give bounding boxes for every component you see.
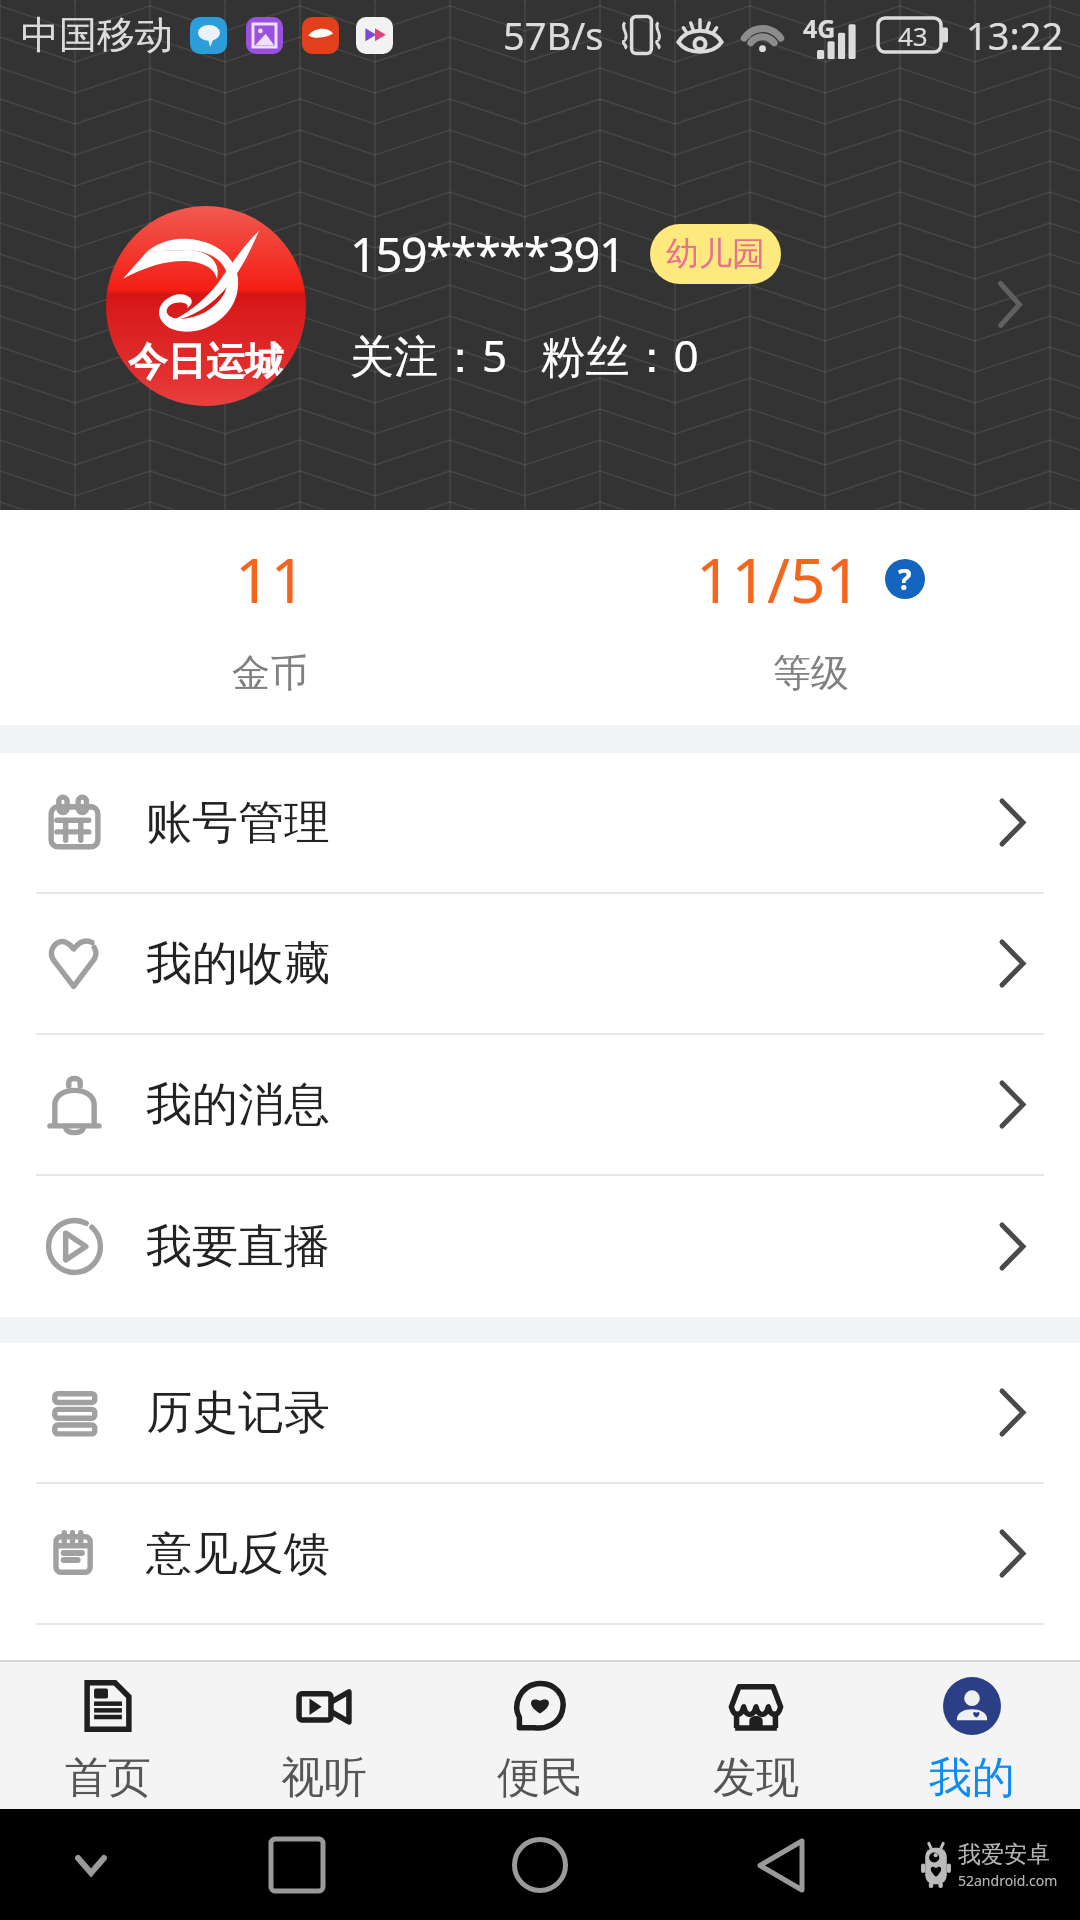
staticText: 发现 <box>713 1751 799 1805</box>
staticText: 账号管理 <box>146 794 330 852</box>
staticText: 11/51 <box>696 537 861 621</box>
button[interactable]: 我的 <box>864 1662 1080 1809</box>
staticText: 中国移动 <box>21 11 173 59</box>
button[interactable]: 幼儿园 <box>650 224 781 284</box>
staticText: 我要直播 <box>146 1218 330 1276</box>
button[interactable]: 意见反馈 <box>0 1484 1080 1625</box>
button[interactable]: Home <box>500 1825 580 1905</box>
button[interactable]: 首页 <box>0 1662 216 1809</box>
staticText: 57B/s <box>503 9 604 61</box>
button[interactable]: 我的收藏 <box>0 894 1080 1035</box>
staticText: 我的消息 <box>146 1076 330 1134</box>
button[interactable]: Avatar <box>106 206 306 406</box>
button[interactable]: Back <box>743 1827 819 1903</box>
staticText: 43 <box>898 18 928 52</box>
staticText: 首页 <box>65 1751 151 1805</box>
staticText: 我的收藏 <box>146 935 330 993</box>
staticText: 便民 <box>497 1751 583 1805</box>
staticText: 52android.com <box>958 1871 1058 1890</box>
staticText: 金币 <box>232 649 308 697</box>
other: Level help <box>885 559 925 599</box>
staticText: 我爱安卓 <box>958 1840 1050 1869</box>
button[interactable]: 11 <box>0 510 540 725</box>
staticText: 意见反馈 <box>146 1525 330 1583</box>
button[interactable]: Profile detail <box>980 262 1040 347</box>
staticText: 等级 <box>773 649 849 697</box>
button[interactable]: 账号管理 <box>0 753 1080 894</box>
button[interactable]: Hide keyboard <box>60 1834 122 1896</box>
staticText: 我的 <box>929 1751 1015 1805</box>
staticText: 关注：5 粉丝：0 <box>350 325 699 385</box>
staticText: ? <box>898 560 912 598</box>
staticText: 159*****391 <box>350 222 625 286</box>
button[interactable]: 便民 <box>432 1662 648 1809</box>
button[interactable]: 历史记录 <box>0 1343 1080 1484</box>
staticText: 13:22 <box>966 9 1064 61</box>
button[interactable]: 我要直播 <box>0 1176 1080 1317</box>
button[interactable]: 11/51 <box>540 510 1080 725</box>
button[interactable]: 视听 <box>216 1662 432 1809</box>
staticText: 幼儿园 <box>666 233 765 275</box>
staticText: 4G <box>803 11 836 45</box>
button[interactable]: 我的消息 <box>0 1035 1080 1176</box>
staticText: 历史记录 <box>146 1384 330 1442</box>
staticText: 今日运城 <box>128 337 284 386</box>
staticText: 视听 <box>281 1751 367 1805</box>
button[interactable]: 发现 <box>648 1662 864 1809</box>
button[interactable]: Recents <box>259 1827 335 1903</box>
staticText: 11 <box>235 537 306 621</box>
